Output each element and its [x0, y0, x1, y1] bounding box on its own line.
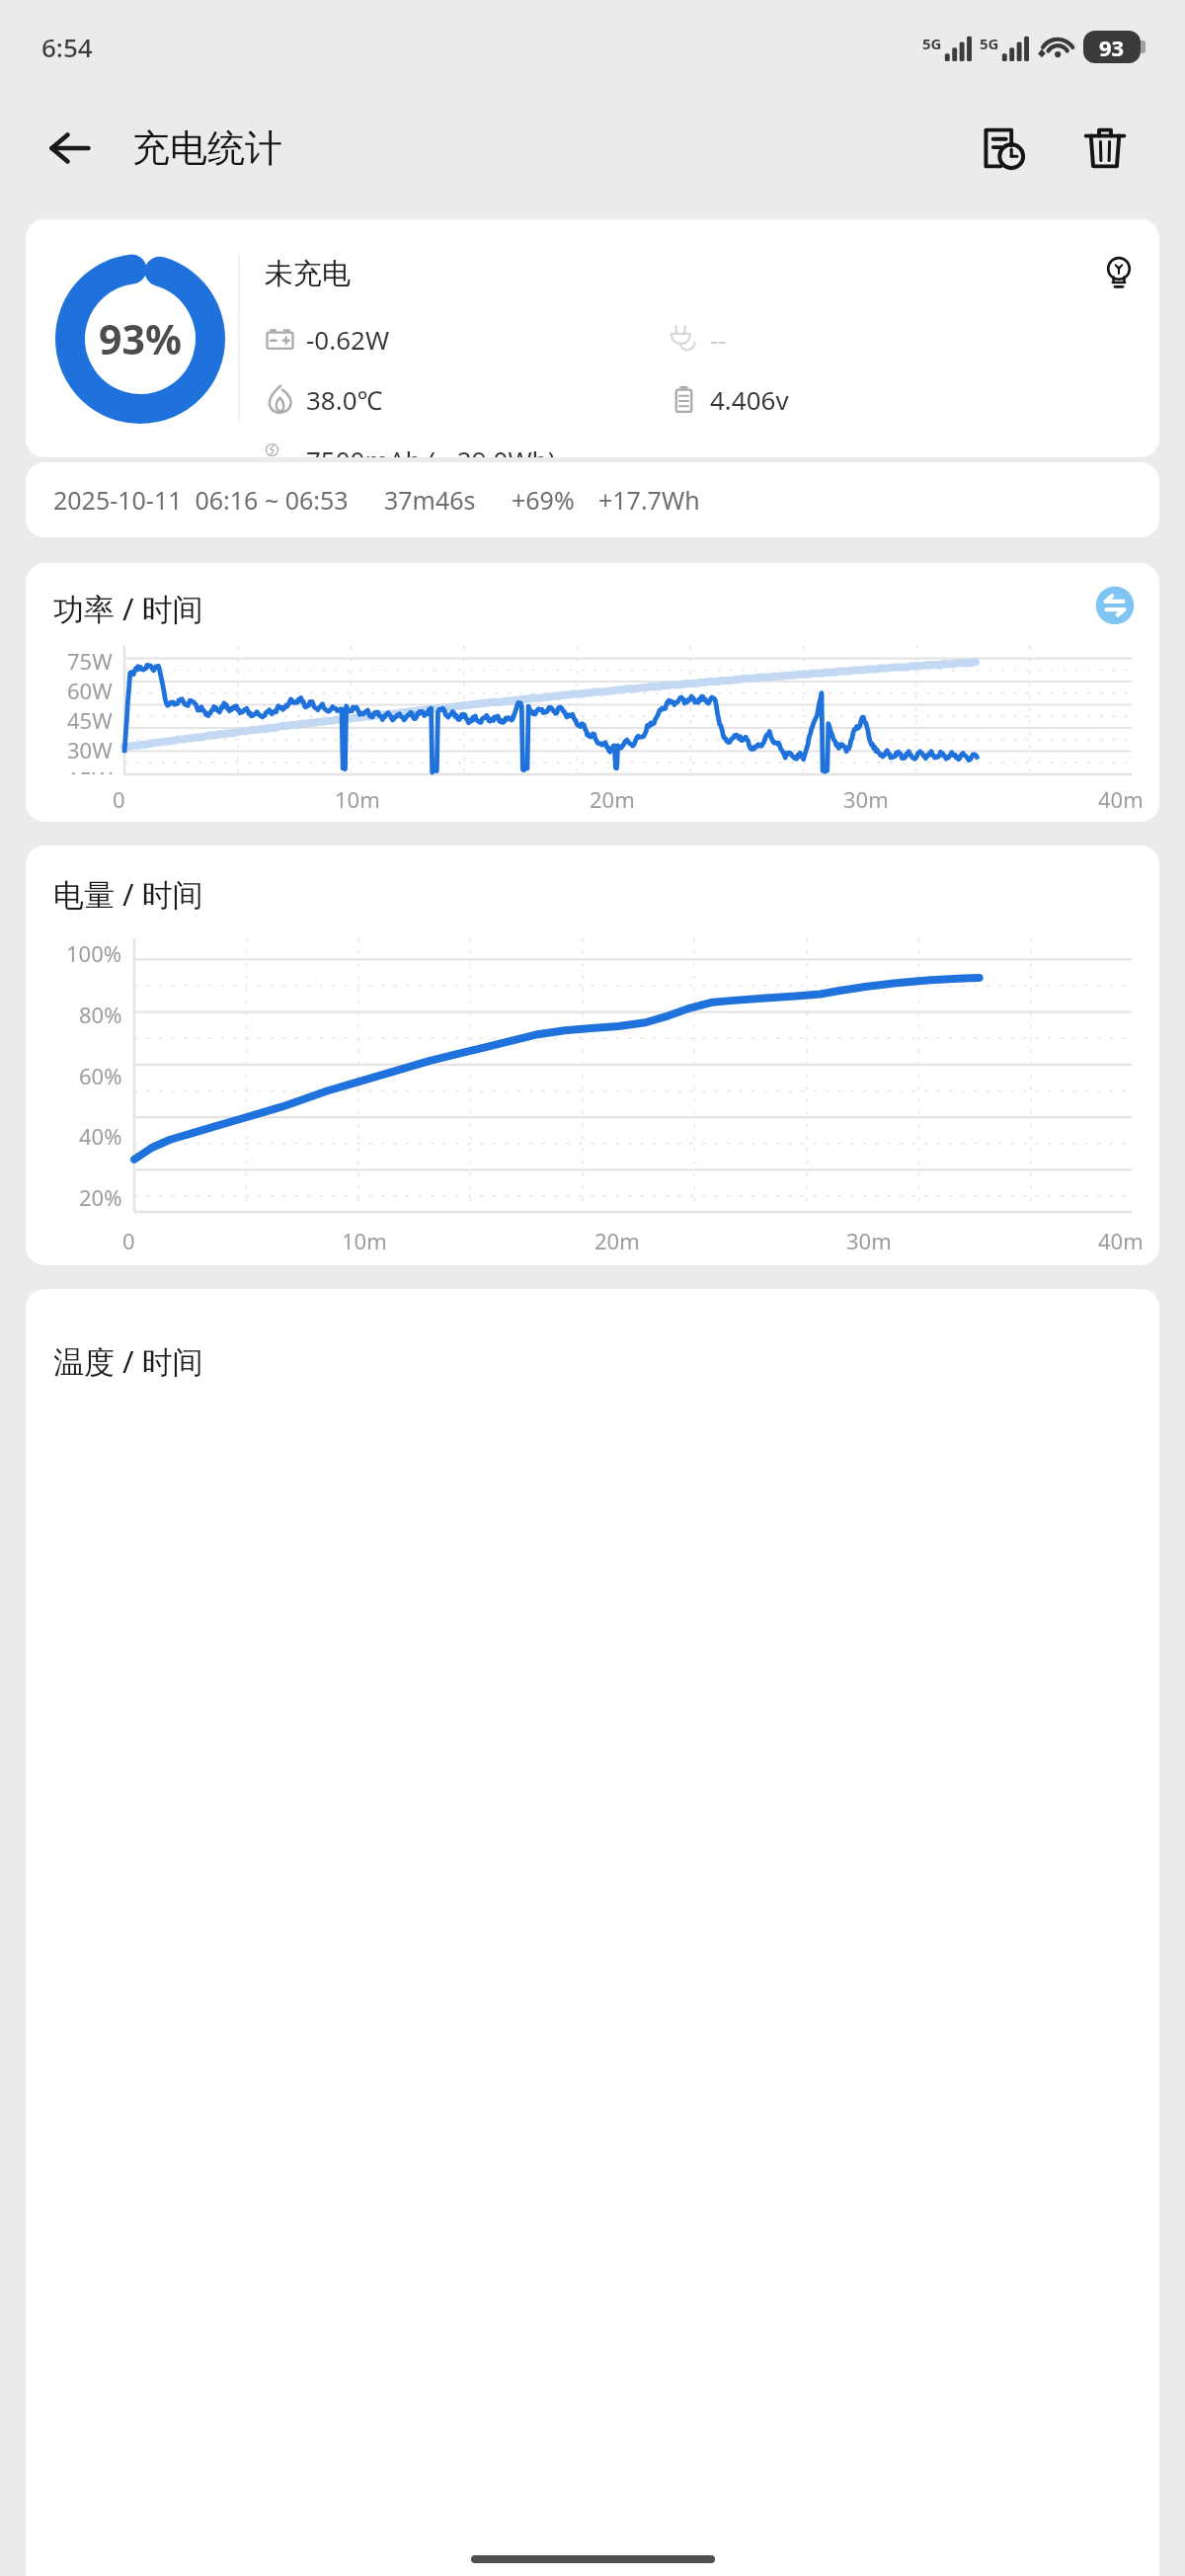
staticText: +17.7Wh: [598, 483, 700, 517]
staticText: 10m: [342, 1226, 387, 1255]
button[interactable]: History: [966, 112, 1039, 185]
staticText: 40%: [79, 1121, 122, 1151]
staticText: 60W: [67, 676, 113, 705]
staticText: 40m: [1098, 1226, 1144, 1255]
staticText: 7500mAh (≈29.0Wh): [306, 443, 556, 457]
staticText: 6:54: [41, 30, 93, 64]
button[interactable]: Swap axes: [1090, 581, 1140, 630]
button[interactable]: Tips: [1094, 249, 1144, 298]
staticText: 0: [113, 784, 125, 814]
button[interactable]: Back: [36, 114, 105, 183]
button[interactable]: 93%: [26, 219, 1159, 457]
staticText: --: [710, 322, 727, 357]
button[interactable]: 电量 / 时间: [26, 845, 1159, 1265]
staticText: 30m: [843, 784, 889, 814]
staticText: 10m: [335, 784, 380, 814]
staticText: 未充电: [265, 256, 351, 292]
staticText: 功率 / 时间: [53, 588, 203, 629]
staticText: 5G: [980, 34, 999, 53]
staticText: -0.62W: [306, 322, 390, 357]
staticText: 2025-10-11 06:16 ~ 06:53: [53, 483, 349, 517]
staticText: 60%: [79, 1061, 122, 1090]
staticText: 37m46s: [384, 483, 476, 517]
staticText: 电量 / 时间: [53, 873, 203, 915]
button[interactable]: Delete: [1068, 112, 1142, 185]
staticText: 38.0℃: [306, 382, 383, 417]
staticText: 40m: [1098, 784, 1144, 814]
staticText: 100%: [66, 938, 122, 968]
button[interactable]: 2025-10-11 06:16 ~ 06:53: [26, 462, 1159, 537]
staticText: 20m: [590, 784, 635, 814]
staticText: 20m: [594, 1226, 640, 1255]
button[interactable]: 功率 / 时间: [26, 563, 1159, 822]
staticText: 93%: [99, 311, 182, 366]
staticText: 45W: [67, 705, 113, 735]
staticText: 75W: [67, 646, 113, 676]
staticText: 30m: [846, 1226, 892, 1255]
staticText: 0: [122, 1226, 135, 1255]
staticText: 4.406v: [710, 382, 789, 417]
button[interactable]: 温度 / 时间: [26, 1289, 1159, 2576]
staticText: 15W: [67, 765, 113, 774]
staticText: 93: [1099, 33, 1125, 62]
staticText: +69%: [512, 483, 575, 517]
staticText: 30W: [67, 735, 113, 765]
staticText: 20%: [79, 1182, 122, 1212]
staticText: 5G: [922, 34, 942, 53]
staticText: 温度 / 时间: [53, 1340, 203, 1382]
staticText: 80%: [79, 1000, 122, 1029]
staticText: 充电统计: [132, 124, 282, 172]
